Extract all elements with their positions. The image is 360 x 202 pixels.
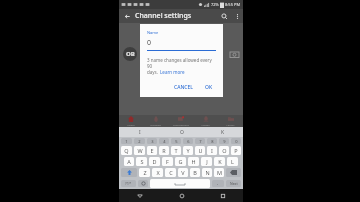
- button[interactable]: B: [190, 168, 200, 177]
- button[interactable]: Key: [121, 180, 136, 187]
- button[interactable]: E: [147, 146, 157, 155]
- button[interactable]: N: [202, 168, 212, 177]
- staticText: Subscriptions: [173, 123, 189, 126]
- staticText: OB: [126, 50, 135, 58]
- button[interactable]: C: [165, 168, 176, 177]
- staticText: J: [206, 158, 208, 165]
- staticText: Home: [127, 123, 135, 126]
- button[interactable]: Activity: [193, 115, 218, 127]
- button[interactable]: Trending: [143, 115, 168, 127]
- button[interactable]: Edit photo: [230, 50, 239, 59]
- button[interactable]: Back: [119, 189, 161, 202]
- button[interactable]: OK: [202, 82, 216, 93]
- staticText: B: [193, 169, 197, 176]
- button[interactable]: Z: [139, 168, 150, 177]
- button[interactable]: Back: [119, 9, 135, 23]
- staticText: O: [222, 147, 227, 154]
- button[interactable]: Key: [138, 180, 148, 187]
- staticText: Next: [230, 181, 238, 186]
- button[interactable]: 6: [183, 138, 193, 144]
- staticText: 1: [125, 139, 128, 144]
- staticText: 6: [187, 139, 190, 144]
- button[interactable]: Home: [119, 115, 143, 127]
- staticText: days.: [147, 69, 160, 75]
- staticText: 8: [211, 139, 214, 144]
- button[interactable]: CANCEL: [171, 82, 196, 93]
- staticText: Learn more: [160, 69, 185, 75]
- staticText: 9: [223, 139, 226, 144]
- button[interactable]: Key: [226, 180, 241, 187]
- staticText: K: [218, 158, 222, 165]
- staticText: I: [211, 147, 213, 154]
- staticText: 7: [199, 139, 202, 144]
- button[interactable]: I: [207, 146, 217, 155]
- button[interactable]: Key: [212, 180, 224, 187]
- button[interactable]: T: [171, 146, 181, 155]
- button[interactable]: Y: [183, 146, 193, 155]
- staticText: Z: [143, 169, 147, 176]
- staticText: Library: [226, 123, 235, 126]
- button[interactable]: R: [159, 146, 169, 155]
- staticText: OK: [205, 84, 213, 91]
- button[interactable]: Space: [150, 179, 210, 188]
- staticText: O: [180, 129, 184, 136]
- button[interactable]: K: [202, 127, 243, 137]
- button[interactable]: More options: [231, 9, 243, 23]
- button[interactable]: V: [178, 168, 188, 177]
- button[interactable]: Library: [218, 115, 243, 127]
- button[interactable]: J: [201, 157, 212, 166]
- button[interactable]: 5: [171, 138, 181, 144]
- staticText: E: [150, 147, 154, 154]
- button[interactable]: F: [162, 157, 173, 166]
- button[interactable]: W: [134, 146, 145, 155]
- button[interactable]: Search: [217, 9, 231, 23]
- button[interactable]: G: [175, 157, 186, 166]
- button[interactable]: Q: [121, 146, 132, 155]
- staticText: 4: [163, 139, 166, 144]
- button[interactable]: K: [214, 157, 225, 166]
- button[interactable]: 8: [207, 138, 217, 144]
- button[interactable]: I: [119, 127, 161, 137]
- button[interactable]: 3: [147, 138, 157, 144]
- button[interactable]: 2: [134, 138, 145, 144]
- button[interactable]: X: [152, 168, 163, 177]
- button[interactable]: Key: [226, 168, 241, 177]
- button[interactable]: D: [149, 157, 160, 166]
- button[interactable]: S: [136, 157, 147, 166]
- button[interactable]: M: [214, 168, 224, 177]
- staticText: Activity: [201, 123, 210, 126]
- staticText: 3 name changes allowed every 90: [147, 57, 216, 69]
- button[interactable]: 4: [159, 138, 169, 144]
- staticText: 0: [235, 139, 238, 144]
- button[interactable]: A: [124, 157, 134, 166]
- button[interactable]: Subscriptions: [168, 115, 193, 127]
- staticText: 72%: [211, 2, 219, 7]
- button[interactable]: O: [161, 127, 202, 137]
- staticText: .: [217, 180, 219, 187]
- button[interactable]: Recents: [202, 189, 243, 202]
- staticText: D: [152, 158, 157, 165]
- button[interactable]: Key: [121, 168, 137, 177]
- button[interactable]: 9: [219, 138, 229, 144]
- button[interactable]: 7: [195, 138, 205, 144]
- staticText: G: [178, 158, 183, 165]
- staticText: I: [139, 129, 141, 136]
- button[interactable]: Home: [161, 189, 202, 202]
- button[interactable]: L: [227, 157, 238, 166]
- staticText: H: [191, 158, 196, 165]
- staticText: C: [169, 169, 173, 176]
- staticText: CANCEL: [174, 84, 193, 91]
- button[interactable]: P: [231, 146, 241, 155]
- staticText: 8:55 PM: [225, 2, 241, 7]
- staticText: P: [234, 147, 238, 154]
- staticText: U: [198, 147, 203, 154]
- button[interactable]: 0: [231, 138, 241, 144]
- button[interactable]: H: [188, 157, 199, 166]
- button[interactable]: O: [219, 146, 229, 155]
- staticText: M: [217, 169, 222, 176]
- button[interactable]: 1: [121, 138, 132, 144]
- staticText: K: [221, 129, 225, 136]
- button[interactable]: U: [195, 146, 205, 155]
- staticText: Q: [124, 147, 129, 154]
- staticText: 0: [147, 38, 152, 48]
